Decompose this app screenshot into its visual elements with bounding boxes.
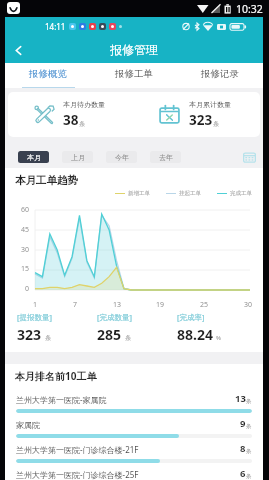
staticText: 45: [21, 225, 30, 235]
staticText: 去年: [159, 153, 173, 162]
staticText: 报修工单: [115, 68, 153, 80]
staticText: 13: [235, 392, 246, 405]
staticText: 上月: [71, 153, 85, 162]
staticText: 8: [240, 442, 246, 455]
staticText: 家属院: [16, 420, 240, 430]
staticText: 报修管理: [110, 42, 158, 57]
button[interactable]: 兰州大学第一医院-门诊综合楼-21F: [5, 442, 263, 467]
button[interactable]: 报修记录: [177, 63, 263, 88]
button[interactable]: 上月: [62, 151, 93, 163]
staticText: 本月工单趋势: [15, 174, 78, 187]
staticText: 10:32: [236, 2, 263, 16]
staticText: 条: [246, 448, 252, 455]
button[interactable]: 去年: [150, 151, 181, 163]
staticText: 0: [25, 284, 30, 294]
staticText: 条: [246, 473, 252, 480]
staticText: 本月: [27, 153, 41, 162]
staticText: 9: [240, 417, 246, 430]
staticText: 挂起工单: [179, 190, 201, 197]
button[interactable]: 报修概览: [5, 63, 91, 88]
staticText: 25: [200, 300, 209, 310]
staticText: 条: [213, 120, 219, 128]
staticText: 本月累计数量: [189, 100, 231, 109]
staticText: 兰州大学第一医院-门诊综合楼-25F: [16, 469, 240, 480]
staticText: 15: [21, 264, 30, 274]
button[interactable]: 本月累计数量: [134, 92, 260, 137]
button[interactable]: 报修工单: [91, 63, 177, 88]
button[interactable]: 本月待办数量: [8, 92, 134, 137]
staticText: 本月排名前10工单: [15, 369, 97, 383]
staticText: 完成工单: [230, 190, 252, 197]
staticText: 新增工单: [128, 190, 150, 197]
staticText: 条: [246, 398, 252, 405]
staticText: 条: [79, 120, 85, 128]
staticText: 323: [189, 111, 213, 129]
button[interactable]: Back: [5, 37, 31, 63]
staticText: 本月待办数量: [63, 100, 105, 109]
staticText: 14:11: [45, 21, 66, 32]
staticText: 报修记录: [201, 68, 239, 80]
staticText: 323: [17, 325, 42, 344]
staticText: [完成数量]: [97, 312, 132, 322]
staticText: 条: [125, 334, 131, 342]
staticText: 6: [240, 467, 246, 480]
staticText: 1: [33, 300, 38, 310]
staticText: 19: [156, 300, 165, 310]
staticText: 报修概览: [29, 68, 67, 80]
staticText: 88.24: [177, 325, 213, 344]
button[interactable]: 本月: [18, 151, 49, 163]
staticText: 兰州大学第一医院-门诊综合楼-21F: [16, 444, 240, 455]
staticText: [完成率]: [177, 312, 205, 322]
button[interactable]: 兰州大学第一医院-家属院: [5, 392, 263, 417]
staticText: 30: [244, 300, 253, 310]
button[interactable]: 家属院: [5, 417, 263, 442]
staticText: 条: [246, 423, 252, 430]
staticText: [提报数量]: [17, 312, 52, 322]
staticText: 兰州大学第一医院-家属院: [16, 394, 235, 405]
staticText: 30: [21, 245, 30, 255]
staticText: 60: [21, 205, 30, 215]
button[interactable]: 今年: [106, 151, 137, 163]
staticText: %: [216, 334, 221, 342]
staticText: 285: [97, 325, 122, 344]
staticText: 条: [45, 334, 51, 342]
staticText: 7: [73, 300, 78, 310]
button[interactable]: Pick date: [242, 151, 257, 163]
staticText: 今年: [115, 153, 129, 162]
staticText: 38: [63, 111, 79, 129]
staticText: 13: [113, 300, 122, 310]
button[interactable]: 兰州大学第一医院-门诊综合楼-25F: [5, 467, 263, 480]
